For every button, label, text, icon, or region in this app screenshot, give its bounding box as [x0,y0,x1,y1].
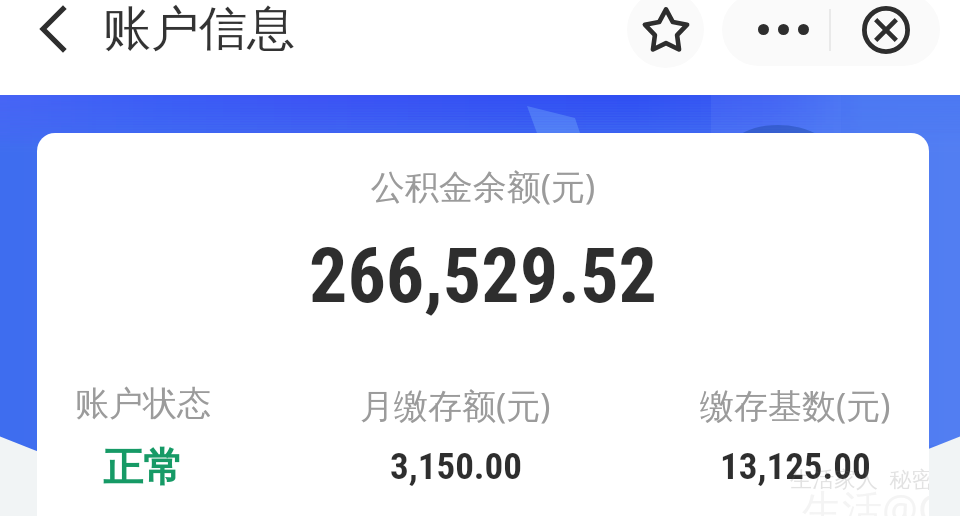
staticText: 正常 [103,442,183,492]
staticText: 缴存基数(元) [700,382,891,428]
staticText: 266,529.52 [37,231,929,320]
button[interactable]: Favorite [627,0,704,68]
staticText: 13,125.00 [720,445,871,488]
staticText: 账户信息 [103,0,295,59]
staticText: 月缴存额(元) [360,382,551,428]
staticText: 账户状态 [75,382,211,425]
button[interactable]: Close [832,0,940,66]
staticText: 公积金余额(元) [37,163,929,209]
button[interactable]: More options [722,0,844,66]
staticText: 生活家人 秘密 [790,463,929,493]
button[interactable]: Back [25,1,81,57]
staticText: 生活@Color [802,481,929,516]
staticText: 3,150.00 [390,445,522,488]
